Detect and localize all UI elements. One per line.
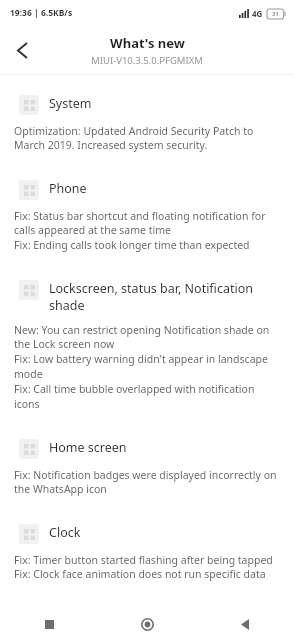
button[interactable]: Home screen xyxy=(0,427,294,468)
staticText: 31 xyxy=(272,10,279,18)
button[interactable]: Back xyxy=(0,28,44,72)
staticText: What's new xyxy=(110,34,185,52)
staticText: Clock xyxy=(49,524,81,541)
staticText: Lockscreen, status bar, Notification sha… xyxy=(49,280,276,314)
staticText: Phone xyxy=(49,180,87,197)
button[interactable]: System xyxy=(0,83,294,124)
button[interactable]: Phone xyxy=(0,168,294,209)
staticText: MIUI-V10.3.5.0.PFGMIXM xyxy=(91,54,203,67)
staticText: Fix: Timer button started flashing after… xyxy=(14,553,273,581)
button[interactable]: Home xyxy=(98,608,196,640)
staticText: 19:36 | 6.5KB/s xyxy=(10,7,73,19)
staticText: Fix: Notification badges were displayed … xyxy=(14,468,278,496)
staticText: New: You can restrict opening Notificati… xyxy=(14,323,278,411)
button[interactable]: Back xyxy=(196,608,294,640)
button[interactable]: Lockscreen, status bar, Notification sha… xyxy=(0,268,294,323)
staticText: Optimization: Updated Android Security P… xyxy=(14,124,278,152)
staticText: Home screen xyxy=(49,439,127,456)
button[interactable]: Recents xyxy=(0,608,98,640)
staticText: System xyxy=(49,95,92,112)
staticText: 4G xyxy=(252,8,263,19)
staticText: Fix: Status bar shortcut and floating no… xyxy=(14,209,278,252)
button[interactable]: Clock xyxy=(0,512,294,553)
